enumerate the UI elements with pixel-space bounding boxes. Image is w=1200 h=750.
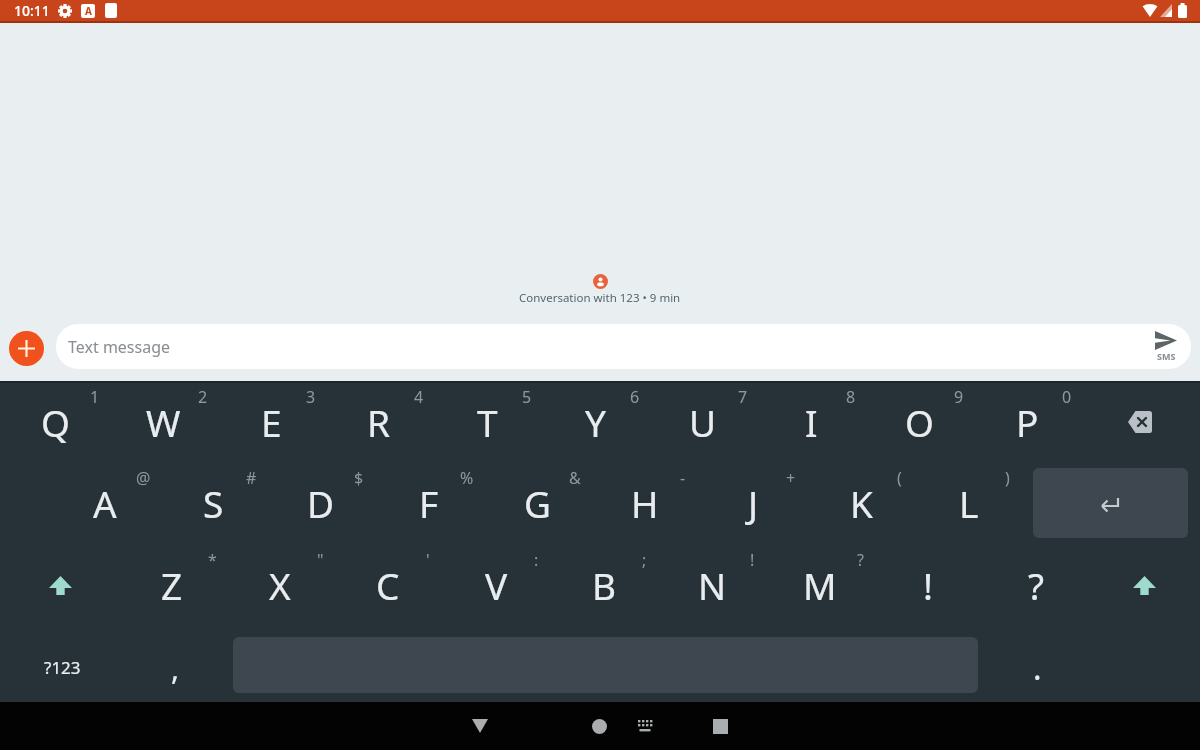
- button[interactable]: F: [379, 465, 479, 541]
- staticText: N: [698, 560, 727, 610]
- button[interactable]: B: [554, 547, 654, 623]
- staticText: !: [750, 549, 755, 571]
- staticText: :: [534, 549, 539, 571]
- staticText: 6: [630, 386, 640, 408]
- staticText: I: [805, 397, 818, 447]
- button[interactable]: G: [487, 465, 587, 541]
- staticText: Text message: [68, 336, 171, 358]
- button[interactable]: P: [977, 384, 1077, 460]
- button[interactable]: I: [761, 384, 861, 460]
- button[interactable]: W: [113, 384, 213, 460]
- button[interactable]: U: [653, 384, 753, 460]
- button[interactable]: !: [878, 547, 978, 623]
- staticText: ,: [171, 648, 180, 689]
- staticText: 8: [846, 386, 856, 408]
- button[interactable]: Text message: [56, 324, 1191, 369]
- staticText: +: [786, 467, 796, 489]
- button[interactable]: ,: [125, 630, 225, 706]
- staticText: W: [146, 397, 181, 447]
- staticText: -: [680, 467, 686, 489]
- button[interactable]: J: [703, 465, 803, 541]
- button[interactable]: Y: [545, 384, 645, 460]
- staticText: 9: [954, 386, 964, 408]
- button[interactable]: C: [338, 547, 438, 623]
- staticText: .: [1033, 646, 1042, 690]
- staticText: ?: [857, 549, 864, 571]
- button[interactable]: A: [55, 465, 155, 541]
- staticText: ): [1005, 467, 1010, 489]
- button[interactable]: [9, 331, 44, 366]
- button[interactable]: [450, 702, 510, 750]
- staticText: Conversation with 123 • 9 min: [519, 290, 681, 306]
- staticText: O: [905, 397, 934, 447]
- staticText: P: [1016, 397, 1039, 447]
- button[interactable]: [15, 547, 105, 623]
- button[interactable]: .: [987, 630, 1087, 706]
- staticText: ;: [642, 549, 647, 571]
- staticText: V: [485, 560, 508, 610]
- button[interactable]: [569, 702, 629, 750]
- button[interactable]: V: [446, 547, 546, 623]
- button[interactable]: Z: [122, 547, 222, 623]
- staticText: F: [419, 478, 439, 528]
- staticText: G: [524, 478, 551, 528]
- button[interactable]: [690, 702, 750, 750]
- staticText: R: [367, 397, 391, 447]
- button[interactable]: [621, 702, 669, 750]
- staticText: &: [569, 467, 581, 489]
- staticText: 10:11: [14, 1, 50, 20]
- staticText: A: [85, 4, 92, 18]
- button[interactable]: R: [329, 384, 429, 460]
- button[interactable]: [1099, 547, 1189, 623]
- staticText: ?: [1028, 560, 1045, 610]
- staticText: 1: [90, 386, 100, 408]
- button[interactable]: L: [919, 465, 1019, 541]
- button[interactable]: O: [869, 384, 969, 460]
- button[interactable]: D: [271, 465, 371, 541]
- button[interactable]: S: [163, 465, 263, 541]
- button[interactable]: E: [221, 384, 321, 460]
- button[interactable]: T: [437, 384, 537, 460]
- button[interactable]: M: [770, 547, 870, 623]
- staticText: 5: [522, 386, 532, 408]
- staticText: E: [261, 397, 282, 447]
- staticText: ': [426, 549, 430, 571]
- staticText: X: [269, 560, 291, 610]
- staticText: K: [850, 478, 873, 528]
- staticText: Z: [161, 560, 183, 610]
- button[interactable]: H: [595, 465, 695, 541]
- staticText: Y: [585, 397, 606, 447]
- staticText: U: [689, 397, 717, 447]
- staticText: 7: [738, 386, 748, 408]
- button[interactable]: [1090, 384, 1190, 460]
- staticText: B: [592, 560, 617, 610]
- staticText: L: [959, 478, 979, 528]
- button[interactable]: [1033, 468, 1188, 538]
- staticText: SMS: [1157, 350, 1176, 362]
- staticText: Q: [41, 397, 70, 447]
- staticText: @: [136, 467, 151, 489]
- staticText: 3: [306, 386, 316, 408]
- button[interactable]: Q: [5, 384, 105, 460]
- staticText: M: [803, 560, 837, 610]
- button[interactable]: K: [811, 465, 911, 541]
- staticText: ?123: [44, 656, 81, 679]
- staticText: H: [631, 478, 659, 528]
- staticText: %: [460, 467, 474, 489]
- button[interactable]: ?: [986, 547, 1086, 623]
- staticText: T: [477, 397, 498, 447]
- staticText: 4: [414, 386, 424, 408]
- button[interactable]: ?123: [12, 629, 112, 705]
- staticText: #: [246, 467, 257, 489]
- button[interactable]: X: [230, 547, 330, 623]
- staticText: D: [307, 478, 335, 528]
- staticText: *: [208, 549, 217, 571]
- staticText: J: [748, 478, 759, 528]
- button[interactable]: SMS: [1154, 331, 1178, 362]
- staticText: 0: [1062, 386, 1072, 408]
- button[interactable]: N: [662, 547, 762, 623]
- staticText: ": [317, 549, 324, 571]
- staticText: S: [203, 478, 224, 528]
- staticText: !: [923, 560, 933, 610]
